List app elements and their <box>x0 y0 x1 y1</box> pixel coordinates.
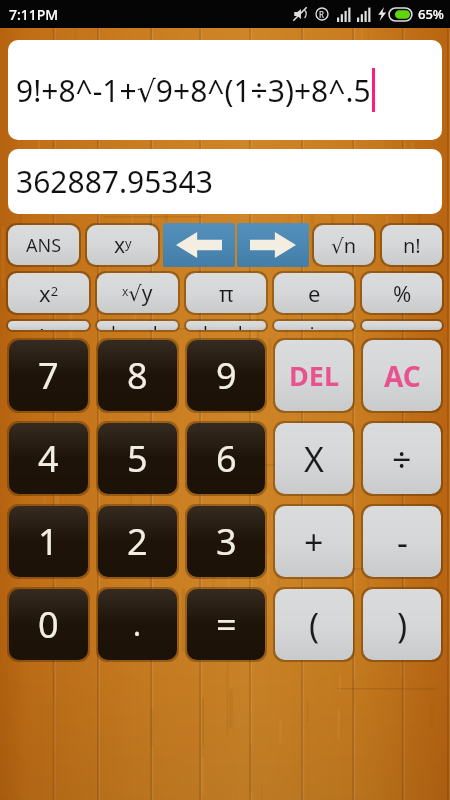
staticText: 6 <box>216 434 237 483</box>
staticText: % <box>393 278 412 308</box>
staticText: 65% <box>418 5 444 23</box>
staticText: ANS <box>26 233 62 258</box>
staticText: 3 <box>216 517 237 566</box>
button[interactable]: X <box>273 421 355 496</box>
staticText: 7 <box>38 351 59 400</box>
button[interactable]: 3 <box>185 504 267 579</box>
staticText: ÷ <box>392 436 412 482</box>
button[interactable]: Move cursor right <box>237 223 309 267</box>
staticText: n! <box>403 232 421 259</box>
button[interactable]: . <box>96 587 179 662</box>
staticText: sin <box>300 321 328 330</box>
button[interactable]: 0 <box>7 587 90 662</box>
staticText: DEL <box>289 357 339 394</box>
staticText: log10b <box>111 321 165 330</box>
staticText: 9 <box>216 351 237 400</box>
staticText: ( <box>309 602 320 648</box>
staticText: R <box>319 9 324 20</box>
button[interactable]: ) <box>361 587 443 662</box>
staticText: logab <box>203 321 250 330</box>
button[interactable]: √n <box>312 223 376 267</box>
button[interactable]: ANS <box>6 223 81 267</box>
button[interactable]: 362887.95343 <box>8 149 442 214</box>
staticText: AC <box>384 357 421 395</box>
button[interactable]: log10b <box>95 319 180 332</box>
staticText: 362887.95343 <box>16 161 213 202</box>
staticText: - <box>397 519 408 565</box>
staticText: π <box>219 278 234 308</box>
button[interactable]: DEL <box>273 338 355 413</box>
staticText: √n <box>331 232 357 259</box>
staticText: ln <box>39 321 59 330</box>
button[interactable]: e <box>272 271 356 315</box>
staticText: 1 <box>38 517 59 566</box>
staticText: ) <box>397 602 408 648</box>
button[interactable]: x2 <box>6 271 91 315</box>
staticText: cos <box>386 321 418 330</box>
button[interactable]: 6 <box>185 421 267 496</box>
button[interactable]: + <box>273 504 355 579</box>
staticText: 2 <box>127 517 148 566</box>
button[interactable]: 5 <box>96 421 179 496</box>
button[interactable]: % <box>360 271 444 315</box>
staticText: 9!+8^-1+√9+8^(1÷3)+8^.5 <box>16 70 371 111</box>
staticText: + <box>304 519 324 565</box>
button[interactable]: ( <box>273 587 355 662</box>
staticText: x√y <box>122 279 153 308</box>
button[interactable]: 1 <box>7 504 90 579</box>
button[interactable]: sin <box>272 319 356 332</box>
button[interactable]: cos <box>360 319 444 332</box>
button[interactable]: π <box>184 271 268 315</box>
staticText: = <box>216 600 237 649</box>
staticText: 0 <box>38 600 59 649</box>
button[interactable]: 7 <box>7 338 90 413</box>
button[interactable]: - <box>361 504 443 579</box>
button[interactable]: 4 <box>7 421 90 496</box>
button[interactable]: 8 <box>96 338 179 413</box>
staticText: X <box>304 436 324 482</box>
staticText: e <box>308 278 321 308</box>
button[interactable]: 2 <box>96 504 179 579</box>
button[interactable]: 9!+8^-1+√9+8^(1÷3)+8^.5 <box>8 40 442 140</box>
staticText: 7:11PM <box>9 5 59 24</box>
button[interactable]: n! <box>380 223 444 267</box>
button[interactable]: ÷ <box>361 421 443 496</box>
button[interactable]: xy <box>85 223 160 267</box>
button[interactable]: ln <box>6 319 91 332</box>
button[interactable]: x√y <box>95 271 180 315</box>
button[interactable]: = <box>185 587 267 662</box>
button[interactable]: Move cursor left <box>163 223 235 267</box>
staticText: 5 <box>127 434 148 483</box>
staticText: xy <box>114 231 132 260</box>
staticText: . <box>133 604 142 645</box>
staticText: x2 <box>39 278 59 308</box>
staticText: 4 <box>38 434 59 483</box>
button[interactable]: 9 <box>185 338 267 413</box>
staticText: 8 <box>127 351 148 400</box>
button[interactable]: logab <box>184 319 268 332</box>
button[interactable]: AC <box>361 338 443 413</box>
